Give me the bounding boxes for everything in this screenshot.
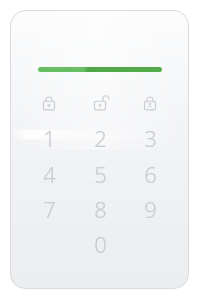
staticText: 7	[43, 194, 56, 224]
button[interactable]: 3	[130, 121, 170, 155]
button[interactable]: Arm away	[33, 87, 65, 119]
button[interactable]: 7	[29, 192, 69, 226]
button[interactable]: 2	[80, 121, 120, 155]
staticText: 9	[144, 194, 157, 224]
button[interactable]: Disarm	[84, 87, 116, 119]
staticText: 6	[144, 159, 157, 189]
button[interactable]: 9	[130, 192, 170, 226]
button[interactable]: 6	[130, 157, 170, 191]
button[interactable]: 8	[80, 192, 120, 226]
staticText: 8	[94, 194, 107, 224]
staticText: 2	[94, 123, 107, 153]
staticText: 3	[144, 123, 157, 153]
button[interactable]: Status indicator	[38, 67, 162, 72]
button[interactable]: Arm home	[134, 87, 166, 119]
button[interactable]: 4	[29, 157, 69, 191]
staticText: 1	[43, 123, 56, 153]
staticText: 4	[43, 159, 56, 189]
button[interactable]: 5	[80, 157, 120, 191]
button[interactable]: 0	[80, 227, 120, 261]
staticText: 5	[94, 159, 107, 189]
staticText: 0	[94, 229, 107, 259]
button[interactable]: 1	[29, 121, 69, 155]
